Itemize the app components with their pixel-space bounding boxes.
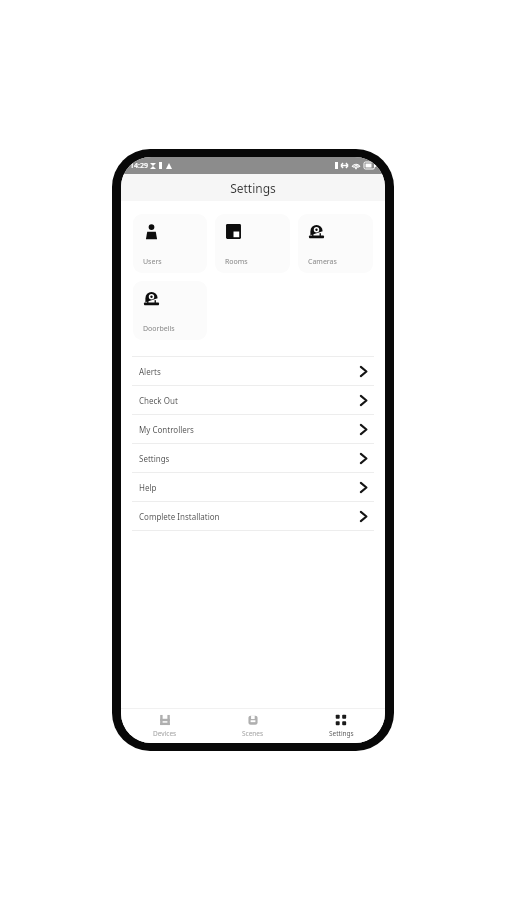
button[interactable]: My Controllers	[121, 415, 385, 443]
staticText: Settings	[139, 453, 170, 464]
button[interactable]: Rooms	[215, 214, 290, 273]
staticText: Scenes	[242, 729, 264, 738]
staticText: 14:29	[130, 161, 148, 171]
staticText: Rooms	[225, 257, 248, 267]
button[interactable]: Settings	[297, 709, 385, 743]
staticText: Help	[139, 482, 157, 493]
staticText: Doorbells	[143, 324, 175, 334]
staticText: Cameras	[308, 257, 337, 267]
staticText: Settings	[230, 180, 276, 196]
button[interactable]: Check Out	[121, 386, 385, 414]
staticText: Alerts	[139, 366, 161, 377]
staticText: Complete Installation	[139, 511, 220, 522]
staticText: Check Out	[139, 395, 178, 406]
button[interactable]: Alerts	[121, 357, 385, 385]
button[interactable]: Users	[133, 214, 207, 273]
button[interactable]: Help	[121, 473, 385, 501]
staticText: Devices	[153, 729, 177, 738]
button[interactable]: Scenes	[209, 709, 297, 743]
button[interactable]: Devices	[121, 709, 209, 743]
staticText: Settings	[329, 729, 354, 738]
button[interactable]: Doorbells	[133, 281, 207, 340]
staticText: Users	[143, 257, 162, 267]
button[interactable]: Complete Installation	[121, 502, 385, 530]
staticText: My Controllers	[139, 424, 194, 435]
button[interactable]: Settings	[121, 444, 385, 472]
button[interactable]: Cameras	[298, 214, 373, 273]
